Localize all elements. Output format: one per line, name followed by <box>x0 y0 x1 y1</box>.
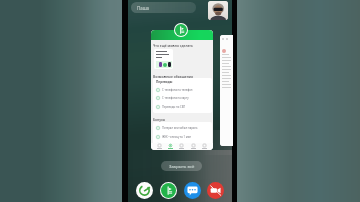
button[interactable]: Потерял или забыл пароль <box>153 122 212 144</box>
button[interactable]: С телефона на телефон <box>153 86 212 94</box>
button[interactable]: Потерял или забыл пароль <box>153 124 212 132</box>
button[interactable]: Sber assistant <box>161 183 176 198</box>
button[interactable]: Ещё <box>202 143 207 149</box>
button[interactable]: Диалоги <box>191 143 196 149</box>
button[interactable]: Assistant <box>136 182 153 199</box>
button[interactable]: Закрыть всё <box>161 161 202 171</box>
staticText: ЖКХ • оплачу за 1 мин <box>162 135 192 139</box>
button[interactable]: Self view <box>208 1 228 20</box>
staticText: Возможные обращения <box>153 74 193 78</box>
button[interactable]: Переводы по СБП <box>153 103 212 111</box>
button[interactable]: Как получить бонусы <box>153 141 212 144</box>
staticText: Закрыть всё <box>169 163 195 169</box>
staticText: Что ещё можно сделать <box>153 43 193 47</box>
staticText: Бонусы <box>153 117 166 121</box>
button[interactable] <box>220 35 233 146</box>
button[interactable]: Stop video <box>207 182 224 199</box>
button[interactable]: История <box>179 143 184 149</box>
button[interactable]: Платежи <box>168 143 173 149</box>
button[interactable]: С телефона на карту <box>153 94 212 102</box>
staticText: С телефона на карту <box>162 96 189 100</box>
staticText: Переводы <box>156 80 173 84</box>
staticText: Потерял или забыл пароль <box>162 126 198 130</box>
staticText: С телефона на телефон <box>162 88 193 92</box>
button[interactable]: Что ещё можно сделать <box>151 30 213 150</box>
staticText: Переводы по СБП <box>162 105 186 109</box>
staticText: Паша <box>137 5 150 11</box>
button[interactable]: ЖКХ • оплачу за 1 мин <box>153 133 212 141</box>
staticText: Как получить бонусы <box>162 143 190 144</box>
button[interactable]: Chat <box>184 182 201 199</box>
button[interactable]: Переводы <box>153 78 212 113</box>
button[interactable]: Паша <box>131 2 196 13</box>
button[interactable]: Главная <box>157 143 162 149</box>
button[interactable] <box>154 49 173 69</box>
